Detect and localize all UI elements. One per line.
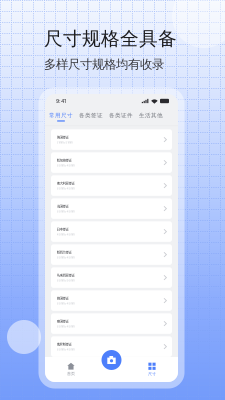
staticText: 各类证件 <box>109 112 133 119</box>
staticText: 各类签证 <box>79 112 103 119</box>
button[interactable]: 拍照 <box>99 348 123 372</box>
staticText: 生活其他 <box>139 112 163 119</box>
staticText: 马来西亚签证 <box>56 273 74 277</box>
staticText: 35mm×45mm <box>56 256 74 259</box>
button[interactable]: 尺寸 <box>135 360 169 378</box>
button[interactable]: 法国签证 <box>51 198 172 219</box>
staticText: 法国签证 <box>56 204 68 208</box>
staticText: 俄罗斯签证 <box>56 342 71 346</box>
button[interactable]: 首页 <box>54 360 88 378</box>
staticText: 澳大利亚签证 <box>56 181 74 185</box>
staticText: 45mm×45mm <box>56 233 74 236</box>
staticText: 35mm×45mm <box>56 210 74 213</box>
button[interactable]: 新加坡签证 <box>51 152 172 173</box>
staticText: 35mm×45mm <box>56 302 74 305</box>
button[interactable]: 澳大利亚签证 <box>51 175 172 196</box>
button[interactable]: 马来西亚签证 <box>51 267 172 288</box>
staticText: 35mm×45mm <box>56 348 74 351</box>
staticText: 多样尺寸规格均有收录 <box>44 56 164 72</box>
button[interactable]: 新西兰签证 <box>51 244 172 265</box>
button[interactable]: 各类证件 <box>106 109 136 125</box>
staticText: 尺寸 <box>148 371 156 376</box>
staticText: 35mm×45mm <box>56 187 74 190</box>
button[interactable]: 美国签证 <box>51 129 172 150</box>
staticText: 35mm×45mm <box>56 325 74 328</box>
staticText: 首页 <box>67 371 75 376</box>
button[interactable]: 日本签证 <box>51 221 172 242</box>
button[interactable]: 常用尺寸 <box>46 109 76 125</box>
staticText: 泰国签证 <box>56 319 68 323</box>
button[interactable]: 生活其他 <box>136 109 166 125</box>
staticText: 日本签证 <box>56 227 68 231</box>
staticText: 尺寸规格全具备 <box>44 27 177 50</box>
button[interactable]: 韩国签证 <box>51 290 172 311</box>
staticText: 美国签证 <box>56 135 68 139</box>
staticText: 9:41 <box>56 98 66 104</box>
button[interactable]: 各类签证 <box>76 109 106 125</box>
staticText: 常用尺寸 <box>49 112 73 119</box>
staticText: 35mm×50mm <box>56 279 74 282</box>
staticText: 韩国签证 <box>56 296 68 300</box>
button[interactable]: 俄罗斯签证 <box>51 336 172 357</box>
staticText: 新加坡签证 <box>56 158 71 162</box>
button[interactable]: 泰国签证 <box>51 313 172 334</box>
staticText: 51mm×51mm <box>56 141 72 144</box>
staticText: 新西兰签证 <box>56 250 71 254</box>
staticText: 35mm×45mm <box>56 164 74 167</box>
